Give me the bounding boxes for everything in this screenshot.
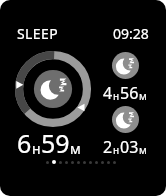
button[interactable]: Light sleep 2 hours 3 minutes (96, 106, 154, 158)
staticText: н (113, 143, 120, 157)
staticText: 03 (120, 136, 139, 158)
staticText: н (32, 139, 41, 158)
staticText: 09:28 (113, 24, 149, 43)
staticText: н (113, 89, 120, 103)
staticText: 4 (103, 82, 113, 104)
staticText: 56 (120, 82, 139, 104)
button[interactable]: Sleep duration 6 hours 59 minutes (14, 50, 92, 128)
staticText: 2 (103, 136, 113, 158)
staticText: м (70, 139, 81, 158)
staticText: SLEEP (17, 24, 59, 43)
staticText: 59 (41, 126, 70, 160)
staticText: м (139, 143, 147, 157)
staticText: 6 (17, 126, 32, 160)
staticText: м (139, 89, 147, 103)
button[interactable]: Deep sleep 4 hours 56 minutes (96, 52, 154, 104)
